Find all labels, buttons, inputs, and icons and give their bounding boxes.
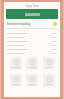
button[interactable] bbox=[7, 43, 57, 47]
button[interactable] bbox=[7, 35, 57, 39]
staticText: BANNER bbox=[25, 12, 40, 17]
button[interactable] bbox=[7, 47, 57, 51]
button[interactable] bbox=[7, 39, 57, 43]
button[interactable]: Action 4 bbox=[26, 74, 38, 87]
button[interactable] bbox=[7, 31, 57, 35]
button[interactable]: BANNER bbox=[6, 9, 58, 19]
staticText: App Title bbox=[26, 4, 39, 8]
button[interactable]: Action 0 bbox=[10, 57, 22, 70]
button[interactable] bbox=[7, 51, 57, 55]
button[interactable]: Action 5 bbox=[43, 74, 55, 87]
button[interactable]: Action 1 bbox=[26, 57, 38, 70]
button[interactable]: Status bbox=[53, 22, 57, 26]
button[interactable]: Action 2 bbox=[43, 57, 55, 70]
button[interactable]: Action 3 bbox=[10, 74, 22, 87]
staticText: Section heading bbox=[7, 22, 53, 26]
